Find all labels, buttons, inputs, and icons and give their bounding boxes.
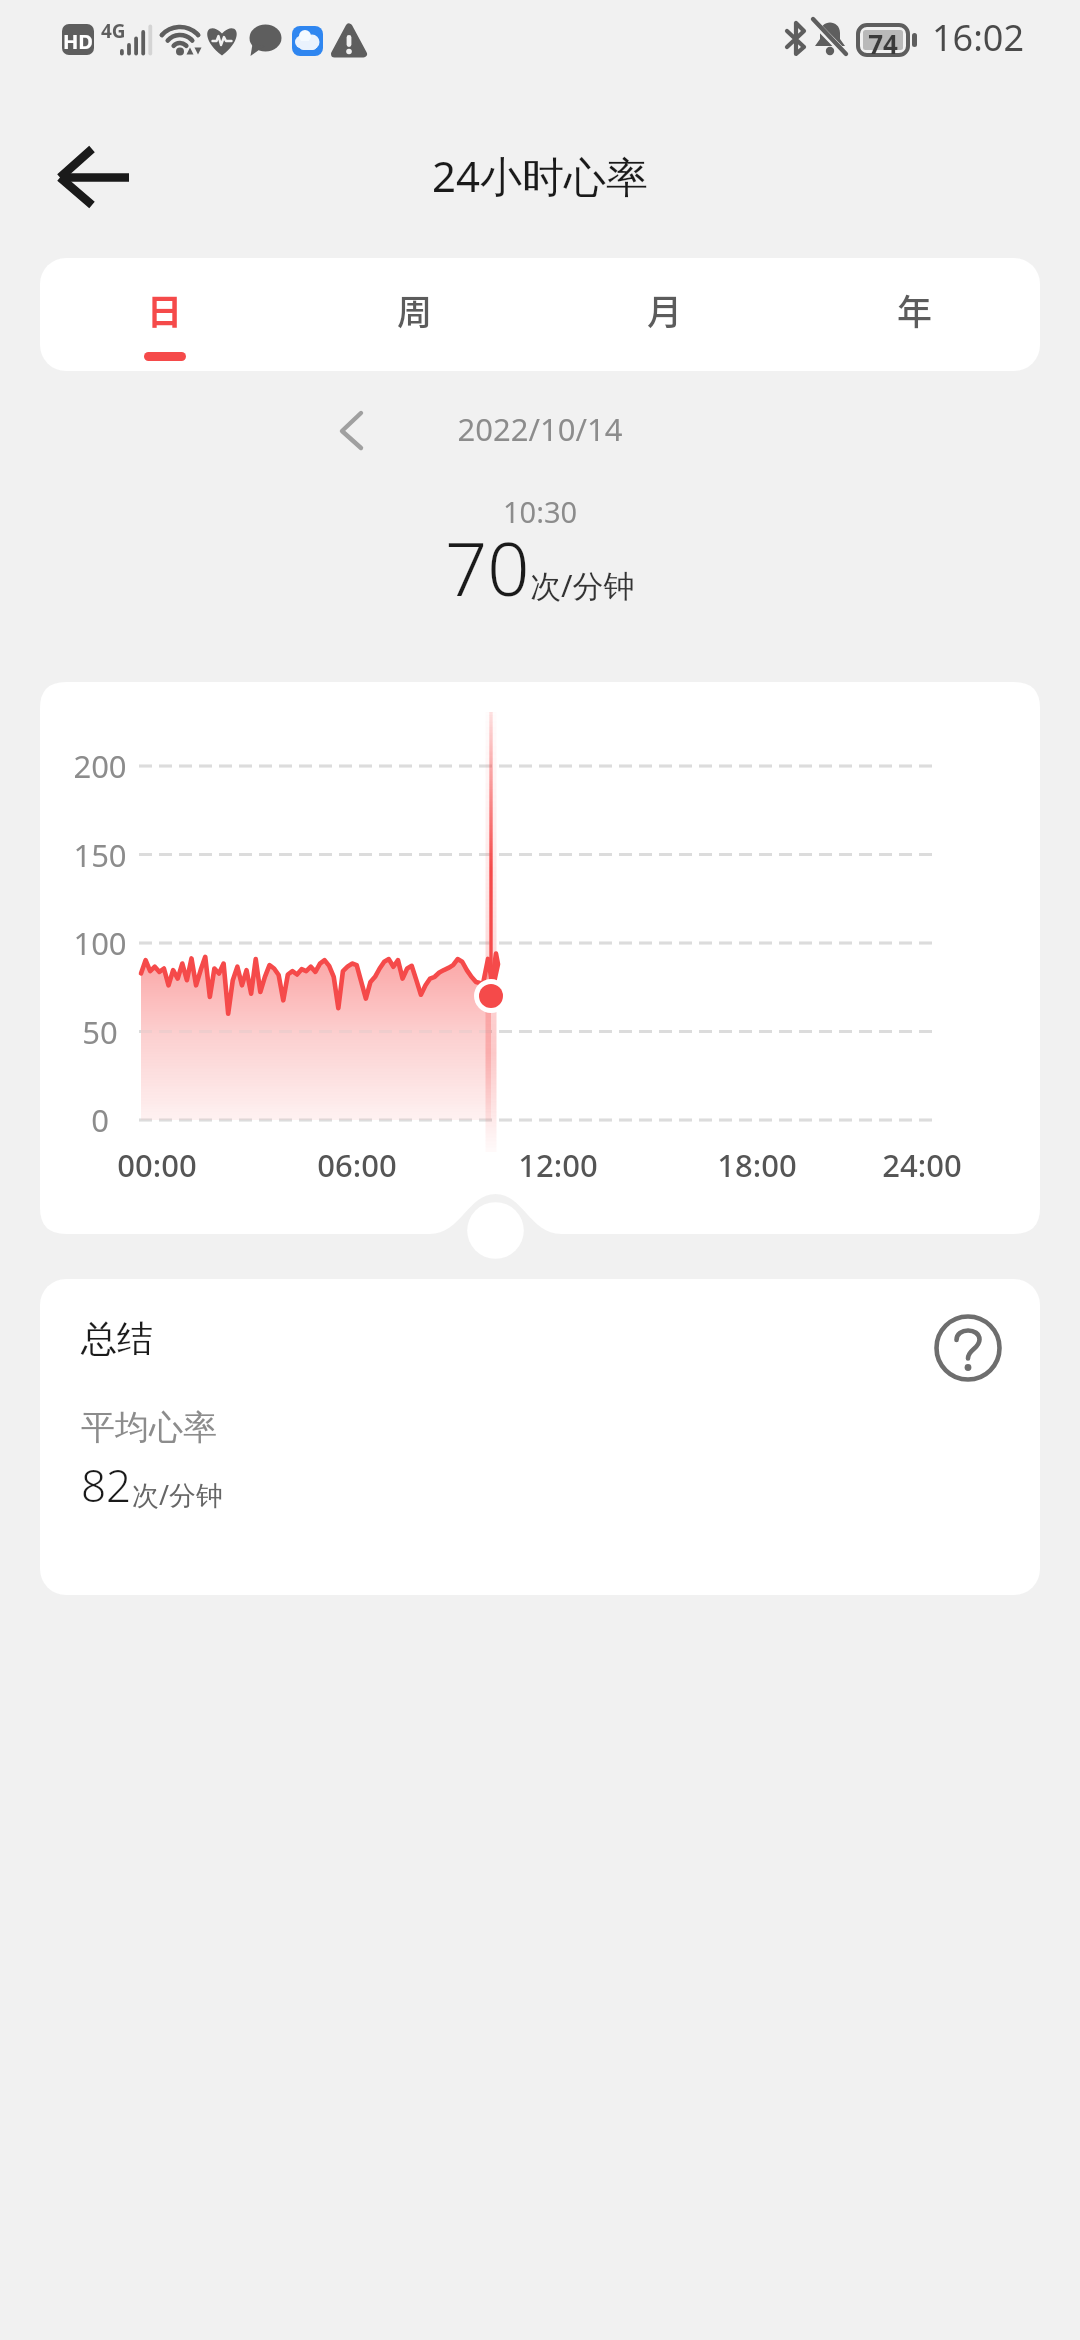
staticText: 24:00: [862, 1144, 982, 1186]
staticText: 82: [81, 1455, 132, 1515]
staticText: 10:30: [503, 492, 578, 531]
staticText: 18:00: [697, 1144, 817, 1186]
staticText: 70: [445, 517, 530, 618]
staticText: 总结: [81, 1316, 153, 1361]
staticText: 24小时心率: [0, 147, 1080, 204]
button[interactable]: Previous day: [311, 393, 391, 473]
staticText: 4G: [101, 18, 126, 44]
button[interactable]: 月: [540, 258, 790, 371]
staticText: HD: [58, 28, 98, 55]
staticText: 日: [147, 284, 183, 335]
button[interactable]: Help: [928, 1308, 1008, 1388]
staticText: 16:02: [932, 13, 1025, 62]
staticText: 月: [647, 284, 683, 335]
staticText: 年: [897, 284, 933, 335]
staticText: 12:00: [498, 1144, 618, 1186]
staticText: 100: [60, 922, 140, 964]
staticText: 50: [60, 1011, 140, 1053]
staticText: 0: [60, 1099, 140, 1141]
staticText: 200: [60, 745, 140, 787]
staticText: 次/分钟: [132, 1476, 224, 1513]
staticText: 00:00: [97, 1144, 217, 1186]
button[interactable]: Back: [30, 115, 150, 235]
button[interactable]: 周: [290, 258, 540, 371]
staticText: 次/分钟: [530, 564, 635, 606]
button[interactable]: 日: [40, 258, 290, 371]
staticText: 2022/10/14: [0, 408, 1080, 450]
staticText: 周: [397, 284, 433, 335]
staticText: 06:00: [297, 1144, 417, 1186]
staticText: 74: [858, 26, 908, 61]
staticText: 150: [60, 834, 140, 876]
button[interactable]: 年: [790, 258, 1040, 371]
staticText: 平均心率: [81, 1406, 217, 1449]
